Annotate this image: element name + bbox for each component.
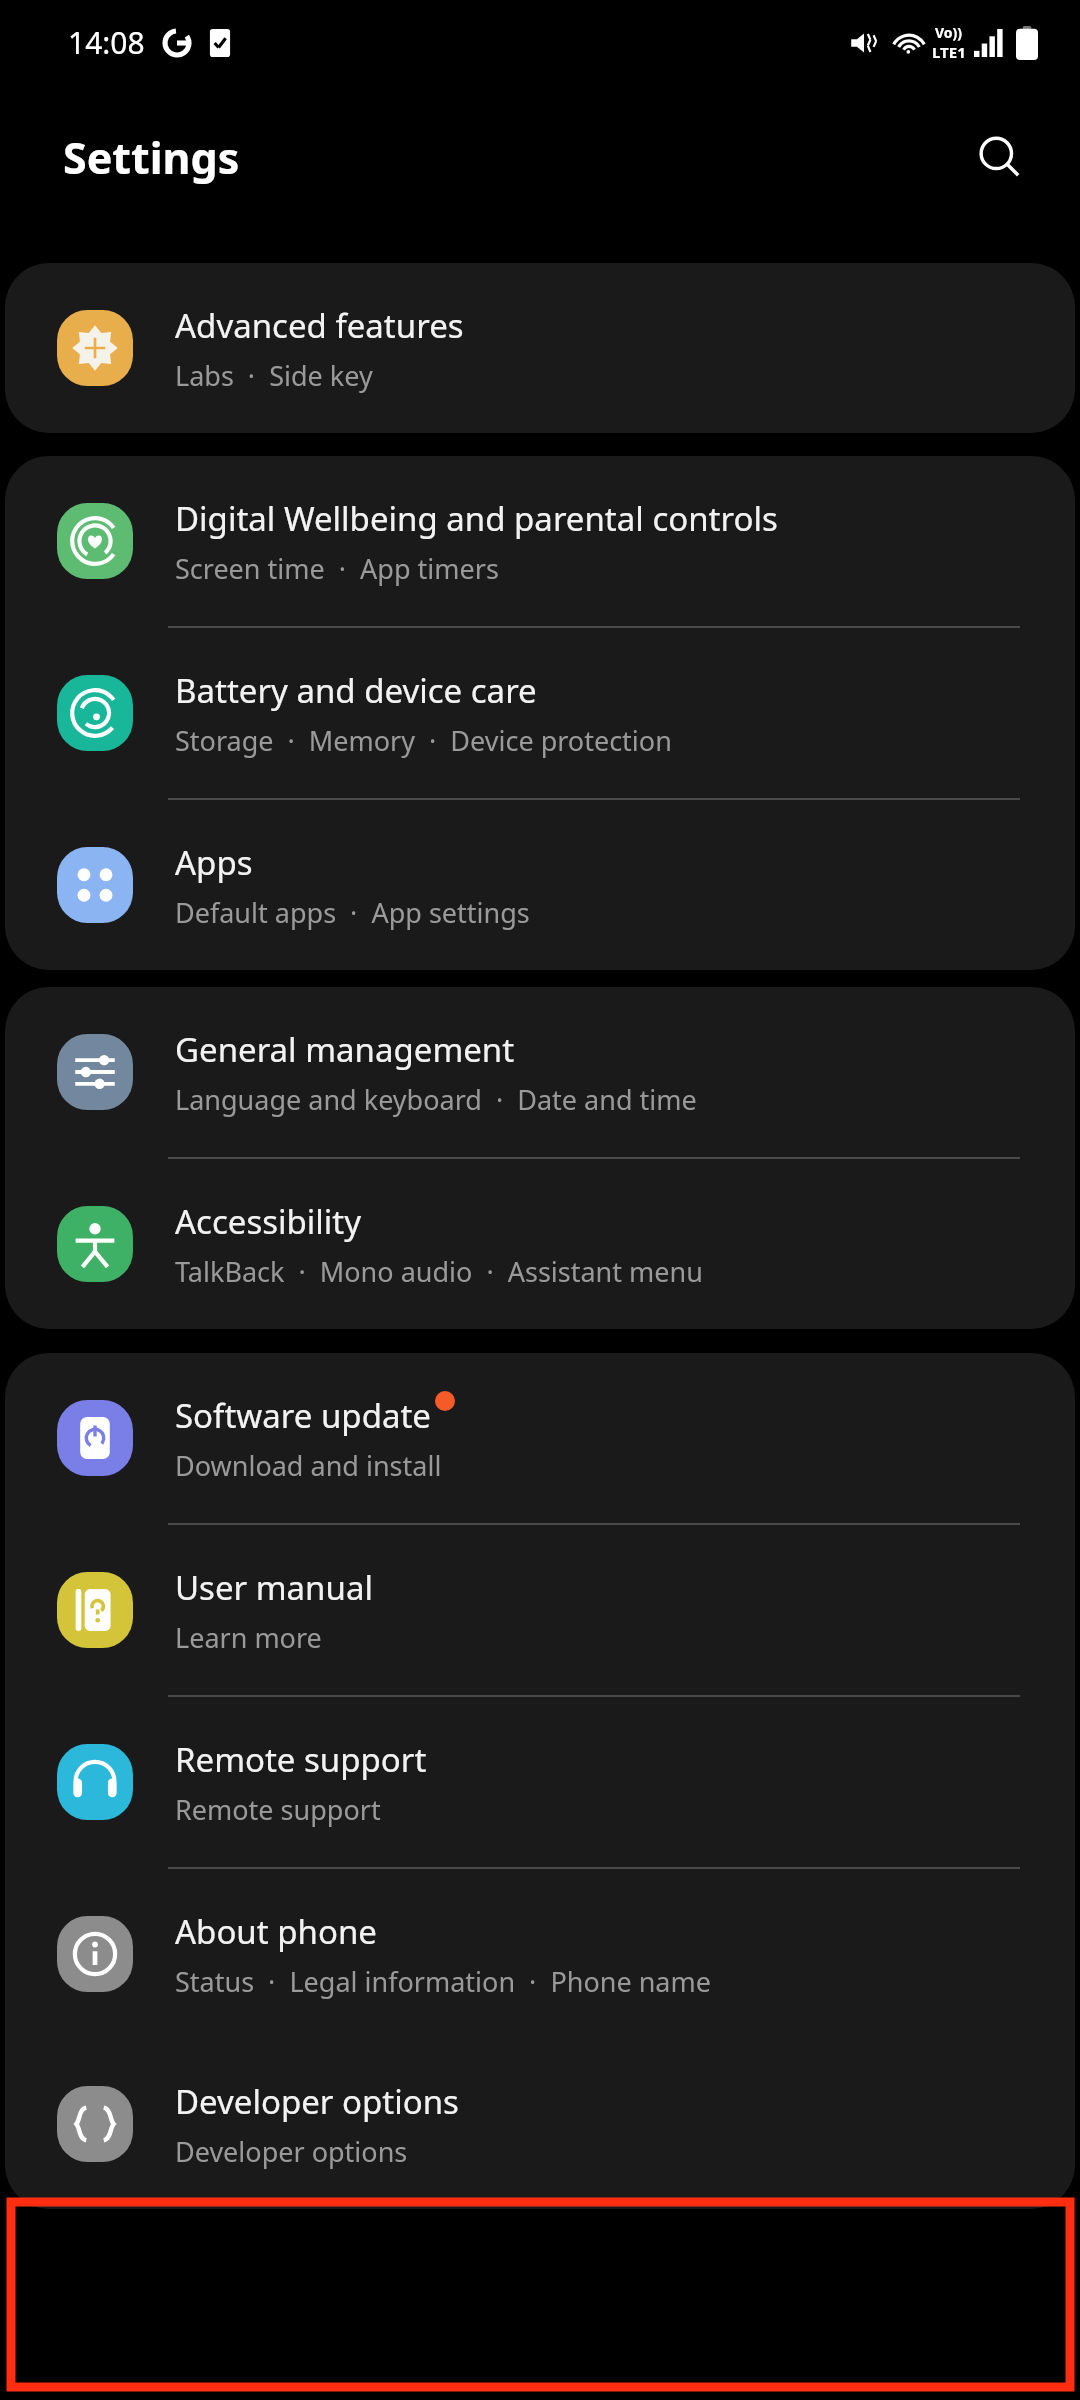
- button[interactable]: Digital Wellbeing and parental controls: [5, 456, 1075, 626]
- staticText: Download and install: [175, 1447, 442, 1484]
- button[interactable]: User manual: [5, 1525, 1075, 1695]
- staticText: 14:08: [68, 22, 145, 63]
- staticText: Apps: [175, 840, 253, 885]
- staticText: Vo)): [935, 23, 963, 42]
- staticText: Labs · Side key: [175, 357, 373, 394]
- button[interactable]: Software update: [5, 1353, 1075, 1523]
- button[interactable]: Advanced features: [5, 263, 1075, 433]
- staticText: Learn more: [175, 1619, 322, 1656]
- staticText: Remote support: [175, 1791, 381, 1828]
- button[interactable]: Remote support: [5, 1697, 1075, 1867]
- staticText: Settings: [63, 128, 240, 187]
- staticText: Advanced features: [175, 303, 464, 348]
- staticText: Language and keyboard · Date and time: [175, 1081, 697, 1118]
- staticText: Battery and device care: [175, 668, 537, 713]
- staticText: Default apps · App settings: [175, 894, 530, 931]
- staticText: LTE1: [932, 42, 966, 62]
- button[interactable]: Apps: [5, 800, 1075, 970]
- staticText: Status · Legal information · Phone name: [175, 1963, 711, 2000]
- staticText: User manual: [175, 1565, 373, 1610]
- button[interactable]: Accessibility: [5, 1159, 1075, 1329]
- staticText: Digital Wellbeing and parental controls: [175, 496, 778, 541]
- button[interactable]: About phone: [5, 1869, 1075, 2039]
- staticText: About phone: [175, 1909, 377, 1954]
- staticText: Accessibility: [175, 1199, 362, 1244]
- staticText: General management: [175, 1027, 515, 1072]
- staticText: Developer options: [175, 2133, 408, 2170]
- staticText: Software update: [175, 1393, 431, 1438]
- button[interactable]: General management: [5, 987, 1075, 1157]
- staticText: TalkBack · Mono audio · Assistant menu: [175, 1253, 703, 1290]
- button[interactable]: Developer options: [5, 2039, 1075, 2209]
- button[interactable]: Search: [962, 120, 1038, 196]
- staticText: Remote support: [175, 1737, 427, 1782]
- button[interactable]: Battery and device care: [5, 628, 1075, 798]
- staticText: Storage · Memory · Device protection: [175, 722, 672, 759]
- staticText: Screen time · App timers: [175, 550, 499, 587]
- staticText: Developer options: [175, 2079, 459, 2124]
